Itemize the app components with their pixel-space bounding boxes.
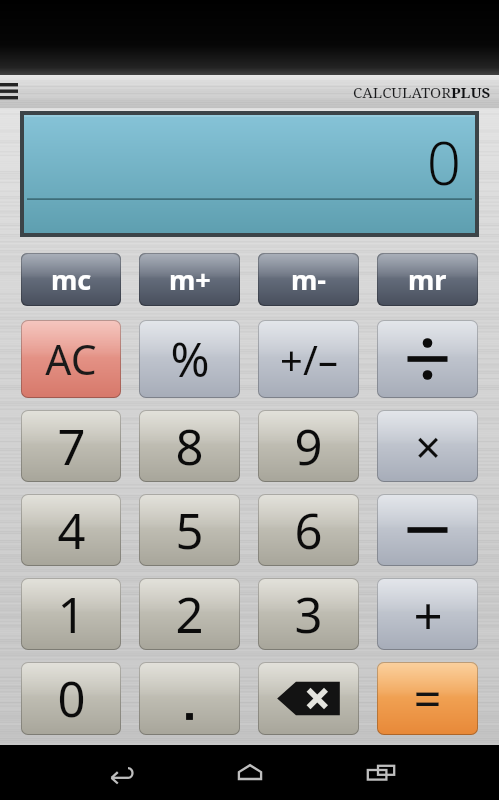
staticText: 5: [175, 497, 204, 564]
staticText: 3: [294, 581, 323, 648]
staticText: 1: [57, 581, 86, 648]
staticText: 0: [57, 665, 86, 732]
button[interactable]: Plus minus: [258, 320, 359, 398]
staticText: 7: [57, 413, 86, 480]
button[interactable]: Minus: [377, 494, 478, 566]
staticText: m+: [169, 261, 211, 298]
staticText: ×: [415, 416, 441, 477]
button[interactable]: 4: [21, 494, 121, 566]
staticText: +/–: [280, 332, 338, 386]
button[interactable]: Backspace: [258, 662, 359, 735]
staticText: mr: [408, 261, 447, 298]
button[interactable]: 5: [139, 494, 240, 566]
staticText: AC: [45, 331, 97, 387]
button[interactable]: Recent apps: [353, 745, 409, 800]
button[interactable]: 3: [258, 578, 359, 650]
staticText: =: [413, 665, 442, 732]
button[interactable]: 0: [21, 662, 121, 735]
staticText: +: [413, 580, 443, 649]
button[interactable]: Decimal point: [139, 662, 240, 735]
button[interactable]: mr: [377, 253, 478, 306]
button[interactable]: 6: [258, 494, 359, 566]
staticText: mc: [51, 261, 92, 298]
button[interactable]: 1: [21, 578, 121, 650]
button[interactable]: 9: [258, 410, 359, 482]
button[interactable]: m-: [258, 253, 359, 306]
button[interactable]: Plus: [377, 578, 478, 650]
button[interactable]: Menu: [0, 77, 24, 107]
button[interactable]: Home: [222, 745, 278, 800]
staticText: PLUS: [451, 82, 491, 102]
button[interactable]: m+: [139, 253, 240, 306]
staticText: 9: [294, 413, 323, 480]
staticText: 2: [175, 581, 204, 648]
staticText: m-: [291, 261, 326, 298]
button[interactable]: 8: [139, 410, 240, 482]
button[interactable]: 7: [21, 410, 121, 482]
button[interactable]: Equals: [377, 662, 478, 735]
button[interactable]: Back: [91, 745, 147, 800]
button[interactable]: 2: [139, 578, 240, 650]
button[interactable]: mc: [21, 253, 121, 306]
button[interactable]: Multiply: [377, 410, 478, 482]
button[interactable]: AC: [21, 320, 121, 398]
button[interactable]: %: [139, 320, 240, 398]
staticText: 6: [294, 497, 323, 564]
staticText: 0: [426, 121, 461, 203]
staticText: CALCULATOR: [353, 82, 451, 102]
staticText: %: [170, 327, 210, 391]
staticText: 8: [175, 413, 204, 480]
staticText: 4: [57, 497, 86, 564]
button[interactable]: Divide: [377, 320, 478, 398]
